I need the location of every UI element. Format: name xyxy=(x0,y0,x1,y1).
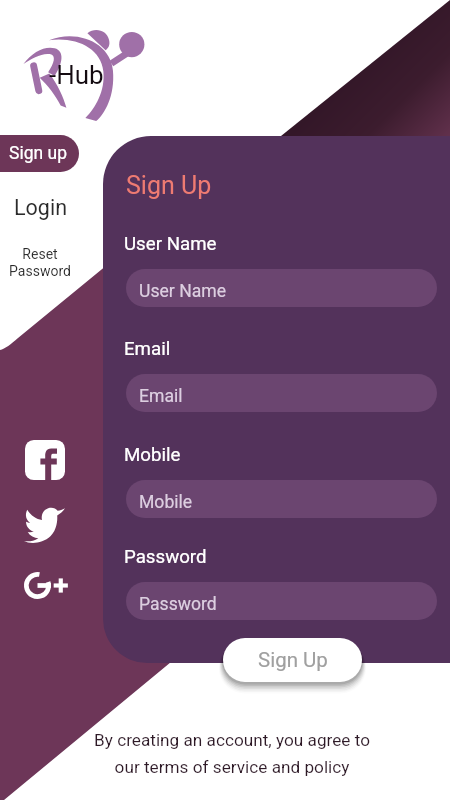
button[interactable]: Login xyxy=(9,192,73,222)
button[interactable]: Sign up with Facebook xyxy=(25,440,65,480)
staticText: Sign up xyxy=(9,143,67,164)
staticText: Email xyxy=(139,386,183,407)
button[interactable]: Sign up with Twitter xyxy=(24,500,65,541)
button[interactable]: Sign up xyxy=(0,135,79,172)
staticText: Reset Password xyxy=(9,246,71,280)
staticText: -Hub xyxy=(49,60,104,90)
staticText: Password xyxy=(124,546,207,568)
staticText: Sign Up xyxy=(126,171,212,200)
staticText: Mobile xyxy=(139,492,193,513)
staticText: Login xyxy=(14,195,68,220)
staticText: Sign Up xyxy=(258,648,328,672)
button[interactable]: Mobile xyxy=(126,480,437,518)
staticText: User Name xyxy=(124,233,217,255)
button[interactable]: Password xyxy=(126,582,437,620)
button[interactable]: Reset Password xyxy=(1,246,79,280)
staticText: Email xyxy=(124,338,171,360)
staticText: By creating an account, you agree to our… xyxy=(7,730,450,778)
staticText: Password xyxy=(139,594,217,615)
button[interactable]: Sign up with Google Plus xyxy=(24,572,67,599)
button[interactable]: Sign Up xyxy=(223,638,362,682)
button[interactable]: User Name xyxy=(126,269,437,307)
staticText: User Name xyxy=(139,281,227,302)
button[interactable]: Email xyxy=(126,374,437,412)
staticText: Mobile xyxy=(124,444,181,466)
